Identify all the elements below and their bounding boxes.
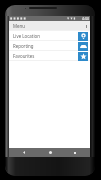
staticText: 4:34 <box>82 16 89 21</box>
button[interactable]: Live Location <box>9 31 90 41</box>
button[interactable]: Menu <box>9 21 90 31</box>
button[interactable]: Recents <box>65 148 85 157</box>
button[interactable]: Reporting <box>9 41 90 51</box>
button[interactable]: Favourites <box>9 51 90 61</box>
staticText: Live Location <box>13 33 40 39</box>
button[interactable]: Home <box>40 148 60 157</box>
staticText: Reporting <box>13 43 34 49</box>
staticText: Menu <box>13 23 25 29</box>
staticText: Favourites <box>13 53 35 59</box>
button[interactable]: Back <box>14 148 34 157</box>
